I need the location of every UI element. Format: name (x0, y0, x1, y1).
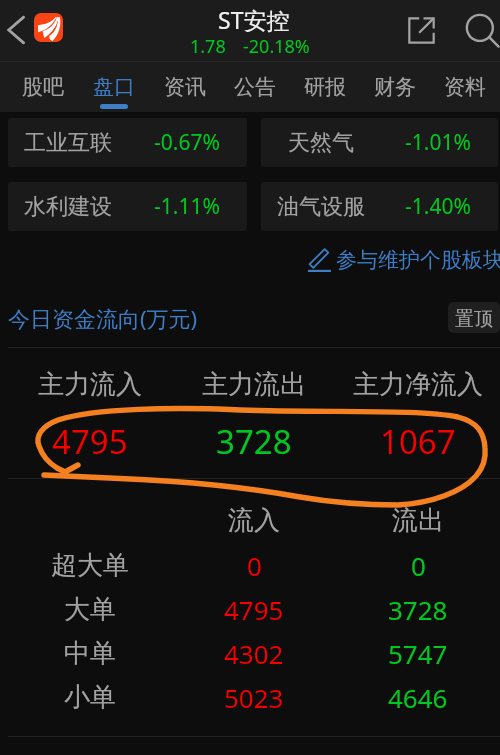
staticText: 水利建设 (24, 193, 112, 221)
button[interactable]: 天然气 (261, 118, 498, 167)
staticText: 主力净流入 (353, 368, 483, 401)
button[interactable]: 水利建设 (8, 182, 247, 231)
button[interactable]: 股吧 (7, 62, 78, 112)
button[interactable]: 公告 (220, 62, 290, 112)
staticText: 1.78 (190, 34, 226, 59)
staticText: 中单 (64, 637, 116, 670)
staticText: -1.11% (154, 192, 220, 221)
button[interactable]: 小单 (8, 675, 500, 719)
staticText: 研报 (304, 74, 346, 100)
button[interactable]: East Money logo (34, 13, 63, 42)
staticText: 油气设服 (277, 193, 365, 221)
button[interactable]: 资料 (430, 62, 500, 112)
staticText: 资讯 (164, 74, 206, 100)
staticText: 财务 (374, 74, 416, 100)
staticText: 0 (411, 548, 426, 583)
button[interactable]: 置顶 (448, 302, 500, 333)
staticText: 公告 (234, 74, 276, 100)
staticText: 超大单 (51, 549, 129, 582)
staticText: 4795 (52, 419, 128, 464)
button[interactable]: 大单 (8, 587, 500, 631)
staticText: 工业互联 (24, 129, 112, 157)
staticText: 4302 (224, 636, 284, 671)
staticText: 盘口 (93, 74, 135, 100)
staticText: 资料 (444, 74, 486, 100)
button[interactable]: Back (1, 13, 35, 47)
staticText: 3728 (216, 419, 292, 464)
staticText: 流出 (392, 504, 444, 537)
button[interactable]: 中单 (8, 631, 500, 675)
staticText: ST安控 (218, 4, 290, 35)
staticText: 主力流入 (38, 368, 142, 401)
staticText: 3728 (388, 592, 448, 627)
staticText: -1.40% (405, 192, 471, 221)
staticText: 今日资金流向(万元) (8, 303, 198, 333)
staticText: 1067 (380, 419, 456, 464)
staticText: -1.01% (405, 128, 471, 157)
button[interactable]: 研报 (290, 62, 360, 112)
staticText: 置顶 (455, 307, 493, 331)
staticText: 0 (247, 548, 262, 583)
button[interactable]: 超大单 (8, 543, 500, 587)
staticText: 天然气 (288, 129, 354, 157)
staticText: 4795 (224, 592, 284, 627)
button[interactable]: 参与维护个股板块 (307, 247, 500, 273)
button[interactable]: 工业互联 (8, 118, 247, 167)
staticText: 主力流出 (202, 368, 306, 401)
button[interactable]: 财务 (360, 62, 430, 112)
button[interactable]: Share (402, 11, 440, 49)
staticText: 大单 (64, 593, 116, 626)
button[interactable]: 资讯 (149, 62, 220, 112)
staticText: -20.18% (243, 34, 310, 59)
staticText: 5747 (388, 636, 448, 671)
staticText: 4646 (388, 680, 448, 715)
button[interactable]: 盘口 (78, 62, 149, 112)
staticText: 参与维护个股板块 (336, 247, 500, 273)
staticText: 股吧 (22, 74, 64, 100)
button[interactable]: Search (461, 9, 500, 51)
staticText: 5023 (224, 680, 284, 715)
staticText: 小单 (64, 681, 116, 714)
button[interactable]: 油气设服 (261, 182, 498, 231)
staticText: -0.67% (154, 128, 220, 157)
staticText: 流入 (228, 504, 280, 537)
